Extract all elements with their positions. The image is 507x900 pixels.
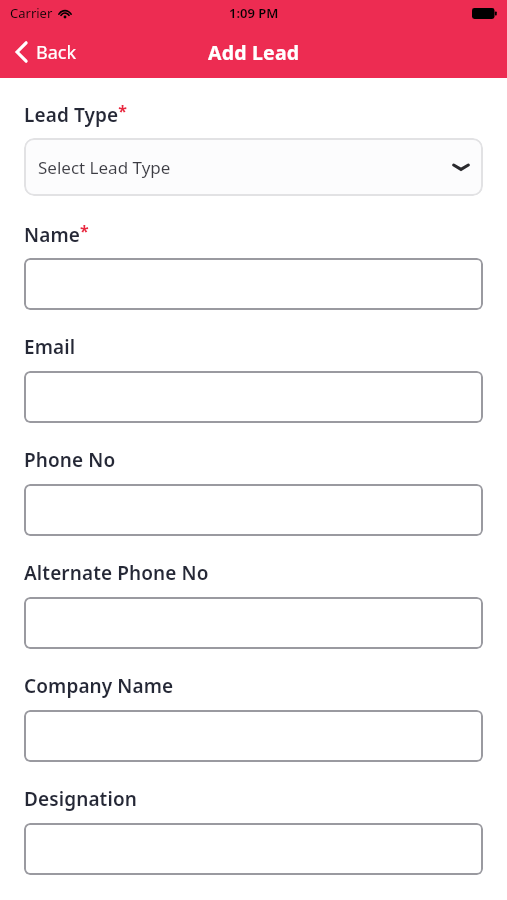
button[interactable] bbox=[24, 371, 483, 423]
staticText: Alternate Phone No bbox=[24, 560, 209, 586]
button[interactable] bbox=[24, 258, 483, 310]
button[interactable] bbox=[24, 710, 483, 762]
staticText: Select Lead Type bbox=[38, 156, 453, 179]
staticText: Back bbox=[36, 40, 77, 65]
button[interactable]: Back bbox=[0, 26, 89, 78]
button[interactable] bbox=[24, 597, 483, 649]
staticText: Company Name bbox=[24, 673, 174, 699]
button[interactable] bbox=[24, 823, 483, 875]
staticText: Phone No bbox=[24, 447, 116, 473]
staticText: Name* bbox=[24, 220, 89, 247]
staticText: Lead Type* bbox=[24, 100, 127, 127]
other: Expand lead type options bbox=[453, 162, 469, 172]
button[interactable] bbox=[24, 484, 483, 536]
staticText: 1:09 PM bbox=[229, 4, 279, 22]
staticText: Email bbox=[24, 334, 76, 360]
staticText: Carrier bbox=[10, 4, 53, 22]
staticText: Add Lead bbox=[208, 39, 300, 66]
button[interactable]: Select Lead Type bbox=[24, 138, 483, 196]
staticText: Designation bbox=[24, 786, 137, 812]
